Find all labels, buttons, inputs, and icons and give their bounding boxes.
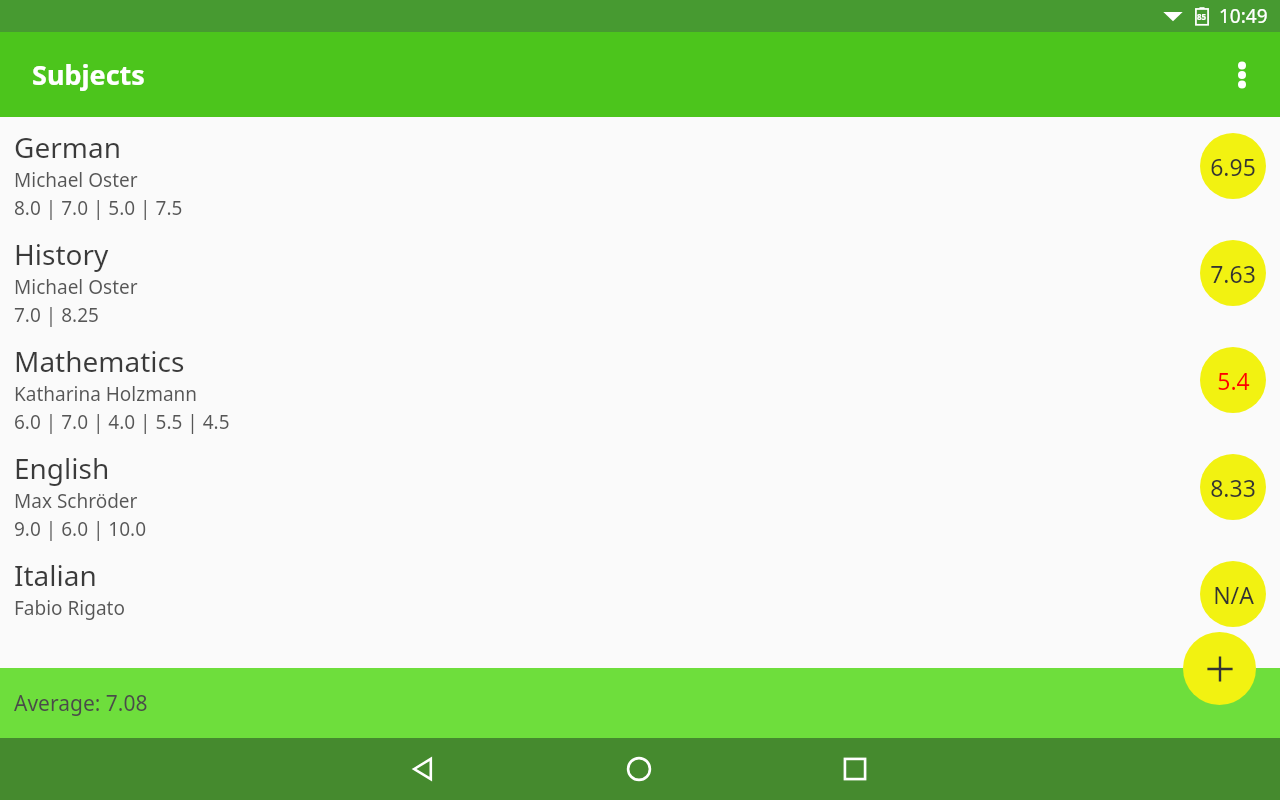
staticText: Fabio Rigato: [14, 595, 125, 621]
button[interactable]: Recents: [827, 741, 883, 797]
staticText: English: [14, 449, 110, 487]
button[interactable]: 7.63: [1200, 240, 1266, 306]
staticText: Mathematics: [14, 342, 185, 380]
staticText: 8.0 | 7.0 | 5.0 | 7.5: [14, 195, 183, 221]
staticText: Max Schröder: [14, 488, 138, 514]
staticText: Average: 7.08: [14, 689, 148, 718]
staticText: 85: [1197, 11, 1207, 22]
staticText: History: [14, 235, 109, 273]
button[interactable]: Back: [395, 741, 451, 797]
staticText: 6.95: [1210, 151, 1256, 182]
button[interactable]: More options: [1218, 51, 1266, 99]
staticText: Michael Oster: [14, 167, 138, 193]
button[interactable]: Home: [611, 741, 667, 797]
button[interactable]: History: [0, 232, 1280, 339]
staticText: N/A: [1213, 579, 1254, 610]
staticText: 10:49: [1219, 3, 1268, 29]
staticText: German: [14, 128, 121, 166]
staticText: 6.0 | 7.0 | 4.0 | 5.5 | 4.5: [14, 409, 230, 435]
staticText: Italian: [14, 556, 97, 594]
staticText: 7.63: [1210, 258, 1256, 289]
button[interactable]: 6.95: [1200, 133, 1266, 199]
button[interactable]: N/A: [1200, 561, 1266, 627]
button[interactable]: German: [0, 125, 1280, 232]
button[interactable]: English: [0, 446, 1280, 553]
staticText: Katharina Holzmann: [14, 381, 198, 407]
staticText: 5.4: [1217, 365, 1250, 396]
button[interactable]: Italian: [0, 553, 1280, 633]
staticText: Subjects: [32, 56, 145, 93]
button[interactable]: Add subject: [1183, 632, 1256, 705]
button[interactable]: Mathematics: [0, 339, 1280, 446]
staticText: Michael Oster: [14, 274, 138, 300]
staticText: 8.33: [1210, 472, 1256, 503]
staticText: 7.0 | 8.25: [14, 302, 99, 328]
button[interactable]: 5.4: [1200, 347, 1266, 413]
button[interactable]: 8.33: [1200, 454, 1266, 520]
staticText: 9.0 | 6.0 | 10.0: [14, 516, 147, 542]
